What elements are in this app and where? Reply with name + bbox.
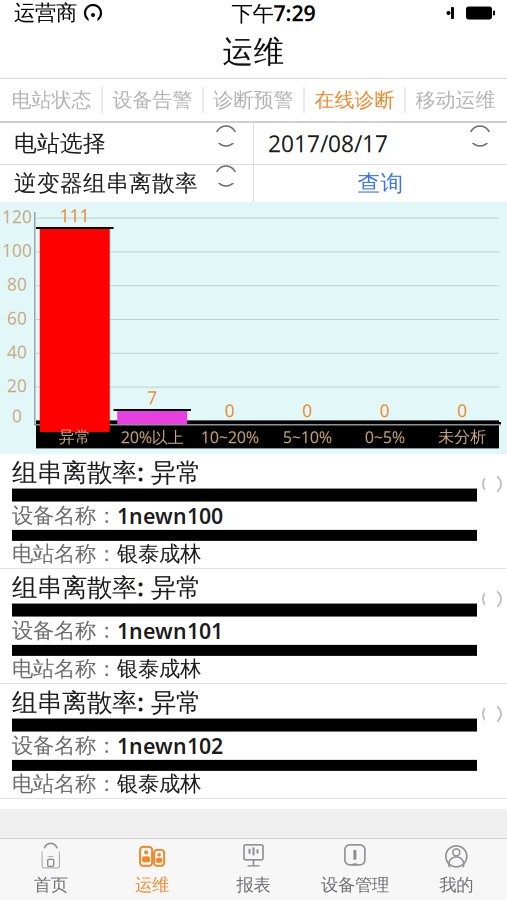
button[interactable]: 组串离散率: 异常 — [0, 569, 507, 683]
staticText: 设备告警 — [112, 88, 192, 112]
button[interactable]: 组串离散率: 异常 — [0, 454, 507, 568]
button[interactable]: 电站选择 — [0, 123, 253, 164]
button[interactable]: 运维 — [101, 839, 203, 900]
button[interactable]: 移动运维 — [405, 79, 505, 121]
staticText: 电站名称： — [12, 771, 117, 797]
staticText: 设备名称： — [12, 503, 117, 529]
button[interactable]: 报表 — [203, 839, 304, 900]
staticText: 0 — [380, 399, 390, 422]
staticText: 0 — [12, 404, 22, 427]
button[interactable]: 设备管理 — [304, 839, 406, 900]
button[interactable]: 设备告警 — [102, 79, 202, 121]
staticText: 组串离散率: 异常 — [12, 455, 201, 488]
staticText: 40 — [7, 340, 27, 363]
staticText: 5~10% — [283, 426, 332, 448]
staticText: 银泰成林 — [117, 541, 201, 567]
staticText: 报表 — [236, 874, 270, 896]
staticText: 0 — [302, 399, 312, 422]
staticText: 组串离散率: 异常 — [12, 570, 201, 603]
staticText: 运维 — [222, 33, 284, 71]
button[interactable]: 逆变器组串离散率 — [0, 165, 253, 202]
staticText: 银泰成林 — [117, 771, 201, 797]
staticText: 电站名称： — [12, 541, 117, 567]
staticText: 下午7:29 — [231, 0, 315, 27]
staticText: 电站选择 — [14, 130, 106, 157]
staticText: 60 — [7, 306, 27, 329]
staticText: 1newn102 — [117, 732, 223, 760]
staticText: 1newn100 — [117, 502, 223, 530]
staticText: 移动运维 — [415, 88, 495, 112]
staticText: 在线诊断 — [314, 88, 394, 112]
staticText: 设备名称： — [12, 618, 117, 644]
staticText: 查询 — [357, 170, 403, 197]
staticText: 运维 — [135, 874, 169, 896]
staticText: 100 — [2, 239, 32, 262]
staticText: 20%以上 — [121, 426, 184, 448]
staticText: 我的 — [439, 874, 473, 896]
button[interactable]: 首页 — [0, 839, 101, 900]
button[interactable]: 诊断预警 — [203, 79, 303, 121]
staticText: 逆变器组串离散率 — [14, 170, 198, 197]
staticText: 设备管理 — [321, 874, 389, 896]
staticText: 0 — [225, 399, 235, 422]
button[interactable]: 在线诊断 — [304, 79, 404, 121]
staticText: 10~20% — [201, 426, 259, 448]
staticText: 组串离散率: 异常 — [12, 685, 201, 718]
staticText: 运营商 — [14, 0, 77, 26]
staticText: 电站状态 — [11, 88, 91, 112]
button[interactable]: 组串离散率: 异常 — [0, 684, 507, 798]
staticText: 111 — [60, 204, 90, 227]
staticText: 80 — [7, 273, 27, 296]
staticText: 首页 — [34, 874, 68, 896]
staticText: 诊断预警 — [213, 88, 293, 112]
staticText: 未分析 — [438, 427, 486, 447]
staticText: 120 — [2, 205, 32, 228]
staticText: 设备名称： — [12, 733, 117, 759]
staticText: 7 — [147, 386, 157, 409]
staticText: 银泰成林 — [117, 656, 201, 682]
staticText: 20 — [7, 374, 27, 397]
staticText: 2017/08/17 — [268, 128, 388, 158]
button[interactable]: 我的 — [406, 839, 507, 900]
staticText: 1newn101 — [117, 617, 223, 645]
button[interactable]: 电站状态 — [1, 79, 101, 121]
staticText: 0 — [457, 399, 467, 422]
staticText: 电站名称： — [12, 656, 117, 682]
staticText: 0~5% — [365, 426, 405, 448]
button[interactable]: 查询 — [254, 165, 507, 202]
button[interactable]: 2017/08/17 — [254, 123, 507, 164]
staticText: 异常 — [59, 427, 91, 447]
